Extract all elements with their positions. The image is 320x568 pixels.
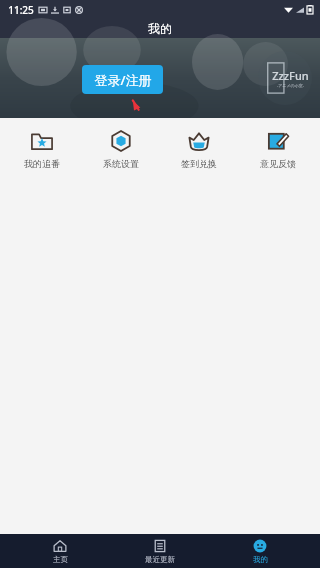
button[interactable]: ZzzFun logo <box>258 51 312 105</box>
staticText: 登录/注册 <box>94 71 152 89</box>
staticText: 签到兑换 <box>181 158 217 169</box>
staticText: -アニメの小室- <box>277 83 304 88</box>
button[interactable]: 最近更新 <box>120 536 200 567</box>
button[interactable]: 我的追番 <box>6 125 78 173</box>
staticText: 意见反馈 <box>260 158 296 169</box>
button[interactable]: 我的 <box>220 536 300 567</box>
staticText: 我的 <box>148 21 172 36</box>
button[interactable]: 意见反馈 <box>242 125 314 173</box>
staticText: 我的追番 <box>24 158 60 169</box>
staticText: 系统设置 <box>103 158 139 169</box>
button[interactable]: 登录/注册 <box>82 65 163 94</box>
button[interactable]: 主页 <box>20 536 100 567</box>
staticText: 最近更新 <box>145 555 175 564</box>
button[interactable]: 系统设置 <box>85 125 157 173</box>
staticText: 我的 <box>253 555 268 564</box>
staticText: ZzzFun <box>272 68 309 83</box>
button[interactable]: 签到兑换 <box>163 125 235 173</box>
staticText: 主页 <box>53 555 68 564</box>
staticText: 11:25 <box>8 3 34 17</box>
